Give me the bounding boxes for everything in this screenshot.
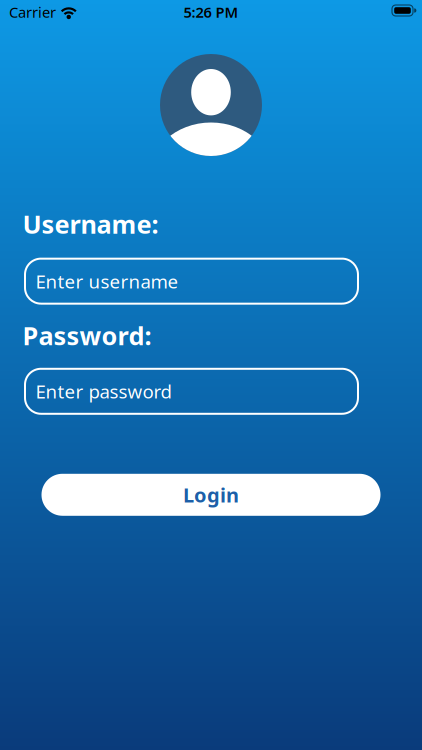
button[interactable]: Login	[41, 474, 380, 516]
button[interactable]: Enter username	[25, 259, 358, 304]
staticText: 5:26 PM	[183, 2, 238, 22]
button[interactable]: Enter password	[25, 369, 358, 414]
staticText: Carrier	[9, 2, 56, 22]
staticText: Login	[183, 481, 239, 508]
staticText: Enter username	[35, 269, 178, 293]
staticText: Password:	[22, 319, 151, 352]
staticText: Enter password	[35, 379, 171, 404]
staticText: Username:	[22, 207, 158, 241]
